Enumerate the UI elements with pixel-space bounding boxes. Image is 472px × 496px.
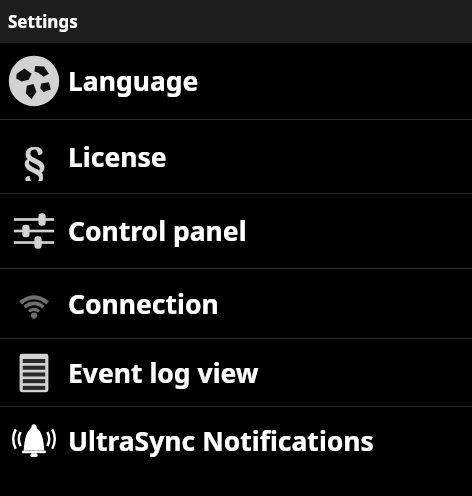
- staticText: Connection: [68, 286, 219, 322]
- staticText: License: [68, 139, 167, 175]
- button[interactable]: Language: [0, 43, 472, 119]
- other: Control panel: [10, 207, 58, 255]
- button[interactable]: Control panel: [0, 194, 472, 268]
- other: License: [10, 133, 58, 181]
- staticText: Language: [68, 63, 199, 99]
- other: Event log view: [10, 349, 58, 397]
- other: Language: [10, 57, 58, 105]
- staticText: UltraSync Notifications: [68, 423, 374, 459]
- other: UltraSync Notifications: [10, 417, 58, 465]
- staticText: Settings: [8, 10, 78, 33]
- other: Connection: [10, 280, 58, 328]
- button[interactable]: Event log view: [0, 339, 472, 406]
- staticText: Event log view: [68, 355, 259, 391]
- staticText: §: [22, 133, 46, 181]
- staticText: Control panel: [68, 213, 247, 249]
- button[interactable]: License: [0, 120, 472, 193]
- button[interactable]: Connection: [0, 269, 472, 338]
- button[interactable]: UltraSync Notifications: [0, 407, 472, 474]
